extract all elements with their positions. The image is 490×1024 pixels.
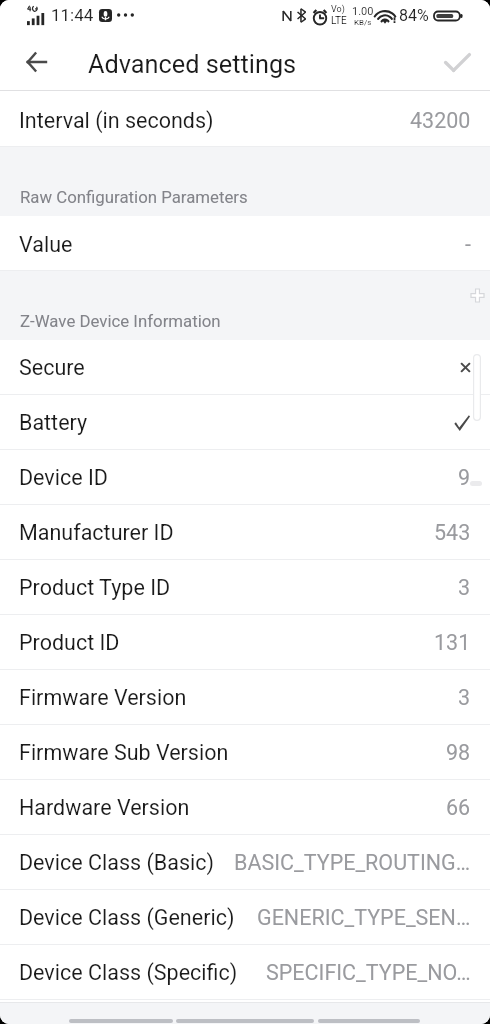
staticText: -	[465, 232, 471, 257]
staticText: 84%	[399, 6, 429, 25]
staticText: 543	[434, 520, 471, 545]
staticText: 11:44	[51, 5, 94, 25]
staticText: Hardware Version	[19, 795, 190, 820]
staticText: 3	[458, 685, 471, 710]
staticText: Secure	[19, 355, 85, 380]
staticText: Manufacturer ID	[19, 520, 174, 545]
staticText: Vo)	[331, 4, 345, 15]
staticText: LTE	[331, 15, 347, 27]
staticText: Device Class (Basic)	[19, 850, 214, 875]
button[interactable]: Device Class (Specific)	[0, 945, 490, 1000]
staticText: Interval (in seconds)	[19, 108, 214, 133]
button[interactable]: Hardware Version	[0, 780, 490, 835]
staticText: 3	[458, 575, 471, 600]
button[interactable]: Battery	[0, 395, 490, 450]
staticText: Device ID	[19, 465, 108, 490]
button[interactable]: Firmware Version	[0, 670, 490, 725]
staticText: Firmware Version	[19, 685, 187, 710]
staticText: Product ID	[19, 630, 120, 655]
staticText: Firmware Sub Version	[19, 740, 229, 765]
staticText: KB/s	[354, 18, 372, 27]
button[interactable]: Interval (in seconds)	[0, 91, 490, 147]
button[interactable]: Back	[318, 1019, 420, 1023]
staticText: 9	[458, 465, 471, 490]
staticText: Advanced settings	[88, 50, 297, 80]
staticText: Raw Configuration Parameters	[20, 187, 248, 207]
button[interactable]: Home	[176, 1019, 314, 1023]
staticText: Z-Wave Device Information	[20, 311, 221, 331]
button[interactable]: Device Class (Basic)	[0, 835, 490, 890]
button[interactable]: Firmware Sub Version	[0, 725, 490, 780]
button[interactable]: Secure	[0, 340, 490, 395]
button[interactable]: Save	[437, 42, 477, 82]
button[interactable]: Device Class (Generic)	[0, 890, 490, 945]
staticText: 1.00	[352, 5, 374, 18]
staticText: GENERIC_TYPE_SEN…	[257, 905, 471, 930]
staticText: BASIC_TYPE_ROUTING…	[234, 850, 471, 875]
button[interactable]: Product ID	[0, 615, 490, 670]
button[interactable]: Manufacturer ID	[0, 505, 490, 560]
staticText: Device Class (Specific)	[19, 960, 238, 985]
staticText: Battery	[19, 410, 88, 435]
staticText: 66	[446, 795, 471, 820]
button[interactable]: Back	[16, 42, 56, 82]
button[interactable]: Product Type ID	[0, 560, 490, 615]
staticText: 98	[446, 740, 471, 765]
button[interactable]: Value	[0, 216, 490, 271]
staticText: 43200	[410, 108, 471, 133]
staticText: Value	[19, 232, 73, 257]
button[interactable]: Recents	[69, 1019, 173, 1023]
staticText: Product Type ID	[19, 575, 171, 600]
staticText: SPECIFIC_TYPE_NO…	[266, 960, 471, 985]
staticText: Device Class (Generic)	[19, 905, 235, 930]
staticText: 131	[434, 630, 471, 655]
button[interactable]: Device ID	[0, 450, 490, 505]
